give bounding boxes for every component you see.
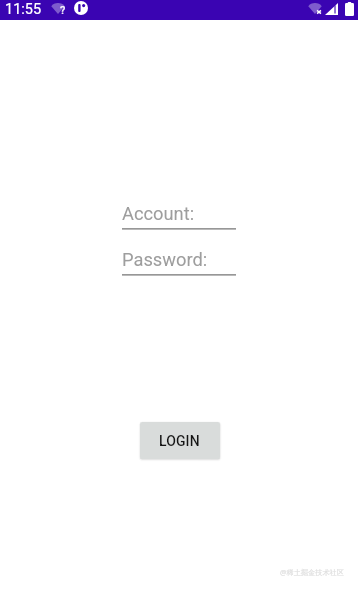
staticText: Password: (122, 249, 208, 270)
staticText: Account: (122, 203, 195, 224)
other: Mobile signal (325, 3, 338, 15)
staticText: ? (60, 4, 66, 17)
staticText: @稀土掘金技术社区 (280, 567, 344, 577)
other: App notification (74, 1, 88, 15)
other: Battery (345, 2, 354, 16)
other: Wi-Fi disconnected (316, 9, 322, 15)
staticText: 11:55 (5, 1, 42, 18)
button[interactable]: Password: (122, 249, 236, 270)
staticText: LOGIN (159, 433, 200, 449)
button[interactable]: Account: (122, 203, 236, 224)
button[interactable]: LOGIN (140, 422, 220, 459)
